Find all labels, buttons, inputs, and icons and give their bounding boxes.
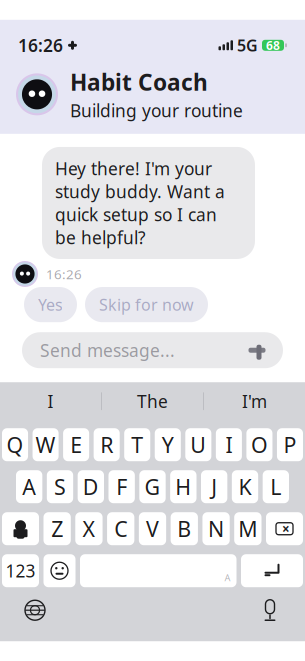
staticText: H <box>175 473 191 501</box>
button[interactable]: Y <box>155 428 181 461</box>
staticText: G <box>144 473 160 501</box>
button[interactable]: E <box>63 428 89 461</box>
staticText: B <box>177 515 191 543</box>
button[interactable]: X <box>75 512 103 545</box>
staticText: Send message... <box>40 339 175 362</box>
staticText: D <box>83 473 99 501</box>
button[interactable]: Space <box>80 554 236 587</box>
staticText: I'm <box>242 390 267 413</box>
staticText: × <box>282 520 290 538</box>
staticText: Habit Coach <box>70 67 208 97</box>
button[interactable]: I <box>0 382 101 420</box>
button[interactable]: 123 <box>2 554 39 587</box>
button[interactable]: Skip for now <box>85 287 208 322</box>
staticText: J <box>211 473 217 501</box>
staticText: 5G <box>237 35 258 56</box>
staticText: I <box>47 390 53 413</box>
button[interactable]: I <box>216 428 242 461</box>
staticText: 68 <box>266 37 280 53</box>
staticText: Q <box>6 431 23 459</box>
staticText: 16:26 <box>18 34 63 57</box>
staticText: Building your routine <box>70 99 243 122</box>
staticText: Hey there! I'm your study buddy. Want a … <box>55 157 225 249</box>
button[interactable]: B <box>171 512 198 545</box>
button[interactable]: V <box>139 512 166 545</box>
staticText: Y <box>162 431 174 459</box>
staticText: X <box>82 515 95 543</box>
staticText: 123 <box>5 559 35 582</box>
button[interactable]: A <box>16 470 42 503</box>
staticText: F <box>116 473 127 501</box>
staticText: L <box>270 473 281 501</box>
button[interactable]: Z <box>43 512 71 545</box>
staticText: S <box>54 473 66 501</box>
staticText: O <box>251 431 268 459</box>
button[interactable]: Return <box>241 554 303 587</box>
button[interactable]: M <box>234 512 261 545</box>
button[interactable]: J <box>201 470 227 503</box>
button[interactable]: R <box>94 428 120 461</box>
staticText: The <box>137 390 168 413</box>
button[interactable]: O <box>246 428 272 461</box>
button[interactable]: G <box>139 470 166 503</box>
button[interactable]: K <box>232 470 258 503</box>
button[interactable]: T <box>124 428 150 461</box>
button[interactable]: U <box>185 428 211 461</box>
button[interactable]: Send message... <box>22 332 283 368</box>
staticText: T <box>131 431 143 459</box>
staticText: P <box>283 431 296 459</box>
staticText: Skip for now <box>99 294 194 315</box>
button[interactable]: Emoji <box>43 554 75 587</box>
button[interactable]: Delete <box>266 512 303 545</box>
button[interactable]: H <box>170 470 196 503</box>
button[interactable]: Shift <box>2 512 39 545</box>
staticText: U <box>190 431 206 459</box>
staticText: A <box>22 473 36 501</box>
staticText: K <box>238 473 251 501</box>
button[interactable]: P <box>277 428 303 461</box>
button[interactable]: Dictate <box>253 593 287 627</box>
staticText: Z <box>51 515 63 543</box>
button[interactable]: W <box>32 428 59 461</box>
staticText: C <box>114 515 127 543</box>
button[interactable]: C <box>107 512 134 545</box>
button[interactable]: The <box>102 382 203 420</box>
button[interactable]: N <box>202 512 230 545</box>
button[interactable]: L <box>263 470 289 503</box>
staticText: W <box>36 431 56 459</box>
staticText: E <box>70 431 82 459</box>
button[interactable]: F <box>108 470 135 503</box>
button[interactable]: S <box>47 470 73 503</box>
button[interactable]: Change keyboard <box>18 593 52 627</box>
staticText: I <box>225 431 232 459</box>
button[interactable]: Yes <box>24 287 77 322</box>
button[interactable]: I'm <box>204 382 305 420</box>
button[interactable]: Q <box>2 428 28 461</box>
staticText: A <box>224 571 230 584</box>
staticText: V <box>146 515 159 543</box>
staticText: M <box>238 515 257 543</box>
staticText: Yes <box>38 294 63 315</box>
staticText: N <box>208 515 224 543</box>
staticText: 16:26 <box>46 265 82 283</box>
button[interactable]: D <box>78 470 104 503</box>
staticText: R <box>100 431 113 459</box>
